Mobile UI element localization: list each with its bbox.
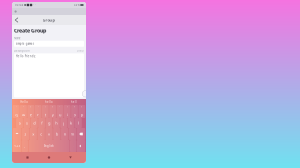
- staticText: j: [63, 120, 64, 126]
- staticText: v: [48, 131, 50, 137]
- staticText: ?123: [13, 144, 20, 148]
- staticText: n: [64, 131, 66, 137]
- staticText: Create Group: [14, 27, 46, 34]
- button[interactable]: Recent apps: [21, 152, 33, 163]
- staticText: c: [40, 131, 42, 137]
- staticText: o: [73, 112, 75, 117]
- staticText: 3: [30, 106, 31, 108]
- staticText: Group: [42, 17, 55, 23]
- staticText: ,: [24, 144, 25, 148]
- staticText: 8: [67, 106, 68, 108]
- staticText: Name: [14, 36, 21, 40]
- staticText: 0/60: [77, 49, 84, 52]
- staticText: k: [70, 120, 72, 126]
- staticText: 64%: [74, 3, 80, 7]
- button[interactable]: hello: [37, 98, 61, 105]
- staticText: s: [26, 120, 28, 126]
- staticText: English: [44, 144, 54, 148]
- staticText: 0: [81, 106, 82, 108]
- staticText: z: [24, 131, 26, 137]
- staticText: e: [30, 112, 32, 117]
- staticText: u: [59, 112, 61, 117]
- staticText: hello: [45, 100, 53, 104]
- button[interactable]: Home: [43, 152, 55, 163]
- staticText: m: [71, 131, 75, 137]
- staticText: simple games: [16, 42, 34, 46]
- staticText: Hello Friends;: [16, 55, 36, 58]
- button[interactable]: Back: [13, 15, 20, 24]
- staticText: 10:04: [14, 3, 23, 7]
- staticText: h: [55, 120, 57, 126]
- button[interactable]: Hello: [12, 98, 37, 105]
- staticText: d: [33, 120, 35, 126]
- staticText: Description: [14, 49, 30, 52]
- staticText: i: [67, 112, 68, 117]
- staticText: · ·: [33, 3, 36, 7]
- staticText: l: [78, 120, 79, 126]
- button[interactable]: hell: [61, 98, 86, 105]
- staticText: t: [45, 112, 46, 117]
- staticText: x: [32, 131, 34, 137]
- staticText: w: [22, 112, 25, 117]
- staticText: 6: [52, 106, 53, 108]
- staticText: a: [19, 120, 21, 126]
- staticText: Hello: [20, 100, 28, 104]
- staticText: g: [48, 120, 50, 126]
- staticText: 7: [59, 106, 60, 108]
- staticText: 1: [16, 106, 17, 108]
- staticText: 5: [45, 106, 46, 108]
- staticText: r: [37, 112, 39, 117]
- staticText: 2: [23, 106, 24, 108]
- staticText: hell: [71, 100, 77, 104]
- staticText: 9: [74, 106, 75, 108]
- button[interactable]: Back: [64, 152, 76, 163]
- staticText: y: [52, 112, 54, 117]
- button[interactable]: Next: [82, 91, 89, 97]
- staticText: q: [15, 112, 17, 117]
- staticText: b: [56, 131, 58, 137]
- staticText: f: [41, 120, 42, 126]
- staticText: p: [81, 112, 83, 117]
